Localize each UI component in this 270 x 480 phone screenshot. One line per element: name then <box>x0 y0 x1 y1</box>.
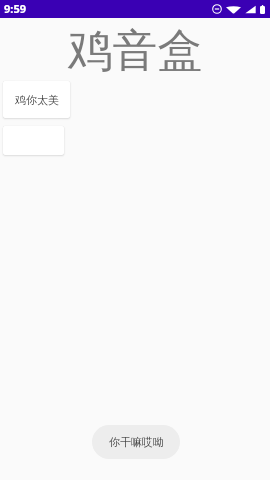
staticText: 你干嘛哎呦 <box>109 435 164 449</box>
other: Mobile signal <box>245 5 256 14</box>
other: Battery <box>260 5 265 14</box>
other: Wifi <box>226 5 241 14</box>
button[interactable]: 鸡你太美 <box>3 81 70 118</box>
other: Do not disturb <box>212 4 222 14</box>
button[interactable]: 你干嘛哎呦 <box>92 425 180 459</box>
staticText: 鸡你太美 <box>15 93 59 107</box>
staticText: 鸡音盒 <box>0 23 270 80</box>
staticText: 9:59 <box>4 1 26 16</box>
